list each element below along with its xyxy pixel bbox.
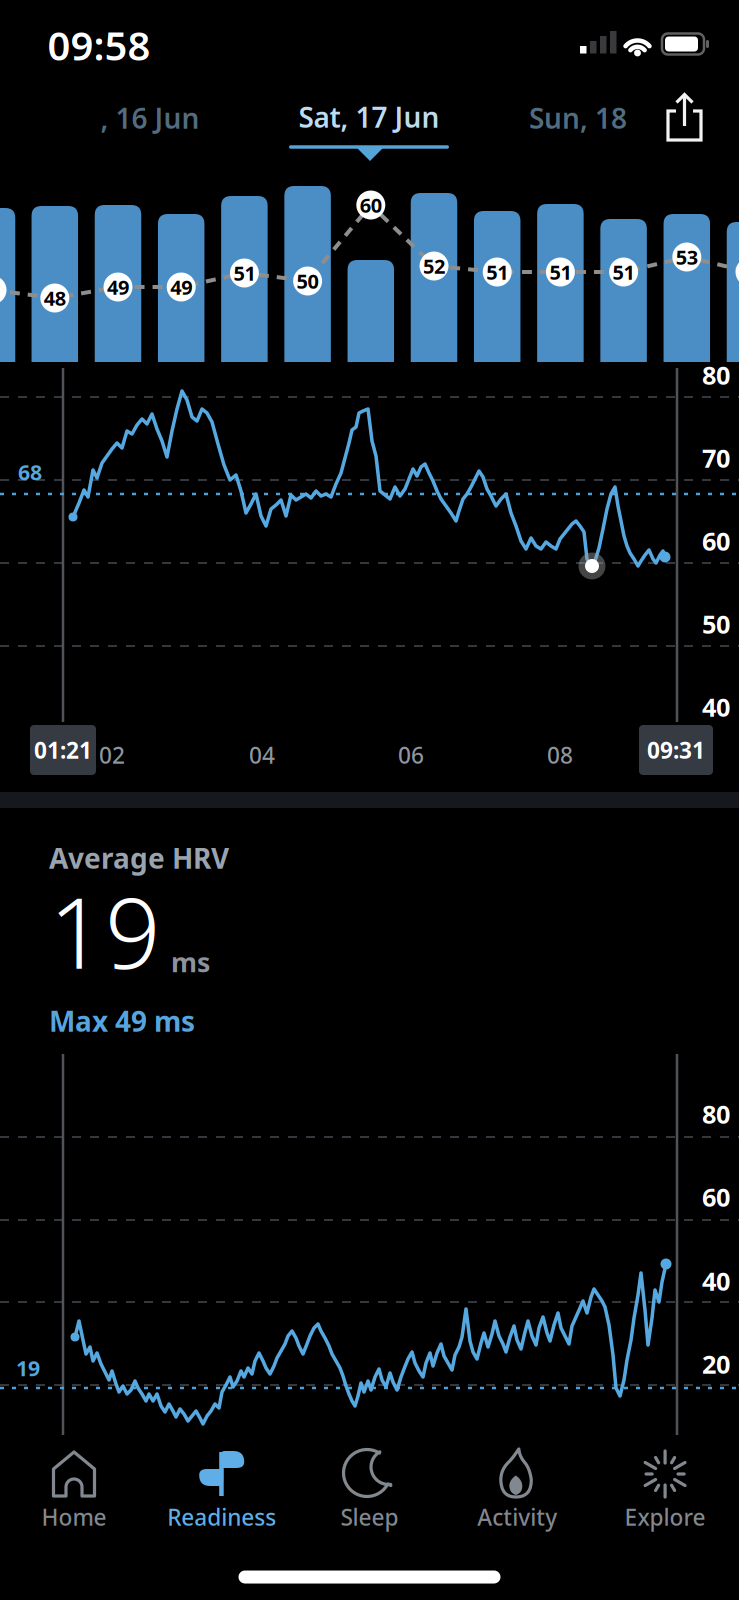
staticText: Average HRV (49, 839, 229, 877)
staticText: Activity (477, 1502, 557, 1532)
staticText: 49 (107, 274, 129, 300)
staticText: 50 (297, 268, 319, 294)
button[interactable]: Sat, 17 Jun (264, 86, 474, 148)
staticText: 49 (170, 274, 192, 300)
button[interactable]: Share (654, 87, 714, 147)
button[interactable]: Explore (591, 1435, 739, 1545)
staticText: 48 (44, 285, 66, 311)
staticText: 51 (486, 259, 508, 285)
button[interactable]: , 16 Jun (50, 87, 250, 149)
staticText: 09:31 (647, 735, 705, 765)
staticText: Sat, 17 Jun (298, 98, 439, 136)
staticText: 51 (549, 259, 571, 285)
staticText: 80 (702, 1097, 730, 1131)
staticText: Sleep (340, 1502, 398, 1532)
staticText: 40 (702, 690, 730, 724)
staticText: 70 (702, 441, 730, 475)
staticText: 40 (702, 1264, 730, 1298)
staticText: 19 (49, 866, 161, 996)
staticText: 06 (398, 740, 424, 770)
staticText: Readiness (167, 1502, 276, 1532)
staticText: ms (171, 944, 210, 980)
staticText: 60 (702, 524, 730, 558)
staticText: 08 (547, 740, 573, 770)
staticText: Home (41, 1502, 106, 1532)
staticText: 53 (676, 244, 698, 270)
button[interactable]: Activity (443, 1435, 591, 1545)
button[interactable]: Readiness (148, 1435, 296, 1545)
staticText: 80 (702, 358, 730, 392)
staticText: 02 (99, 740, 125, 770)
staticText: 60 (702, 1180, 730, 1214)
staticText: 51 (613, 259, 635, 285)
staticText: 04 (249, 740, 275, 770)
staticText: 19 (16, 1354, 40, 1382)
button[interactable]: Home (0, 1435, 148, 1545)
staticText: 09:58 (47, 18, 150, 71)
staticText: 68 (18, 458, 42, 486)
staticText: 20 (702, 1347, 730, 1381)
staticText: 01:21 (34, 735, 92, 765)
staticText: , 16 Jun (100, 99, 199, 137)
staticText: 51 (233, 260, 255, 286)
staticText: Explore (625, 1502, 706, 1532)
staticText: Max 49 ms (49, 1002, 195, 1040)
button[interactable]: Sleep (295, 1435, 443, 1545)
button[interactable]: Sun, 18 (488, 87, 668, 149)
staticText: 60 (360, 192, 382, 218)
staticText: Sun, 18 (529, 99, 627, 137)
staticText: 52 (423, 253, 445, 279)
staticText: 50 (702, 607, 730, 641)
